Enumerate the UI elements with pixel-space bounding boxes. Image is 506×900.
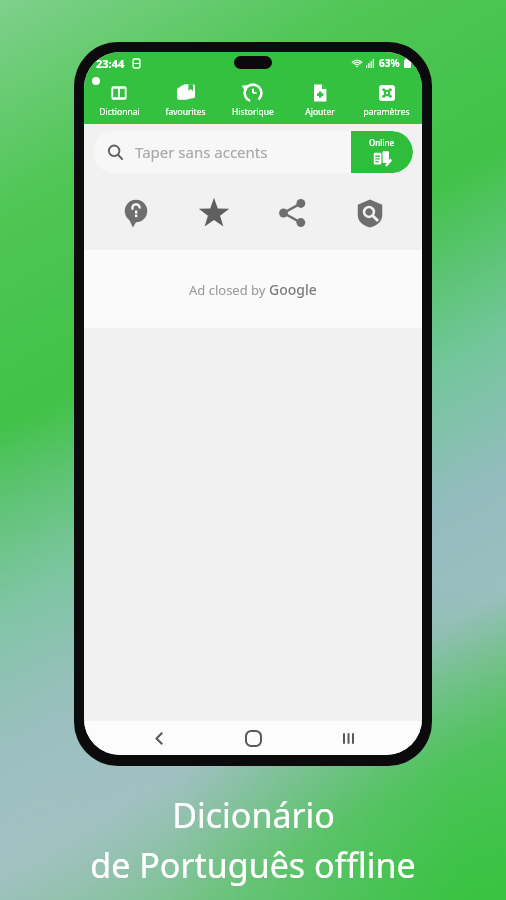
button[interactable]: Back: [139, 721, 179, 755]
staticText: Ajouter: [305, 106, 335, 118]
button[interactable]: Ad closed by: [84, 250, 422, 328]
button[interactable]: favourites: [152, 80, 219, 118]
button[interactable]: Privacy: [348, 191, 392, 235]
button[interactable]: Home: [233, 721, 273, 755]
staticText: de Português offline: [90, 842, 416, 888]
button[interactable]: paramètres: [353, 80, 420, 118]
button[interactable]: Dictionnai: [86, 80, 152, 118]
button[interactable]: Taper sans accents: [93, 131, 413, 173]
staticText: Dicionário: [172, 792, 335, 838]
staticText: Taper sans accents: [135, 142, 268, 162]
staticText: 23:44: [96, 56, 125, 71]
staticText: Ad closed by: [189, 281, 269, 299]
button[interactable]: Ajouter: [286, 80, 353, 118]
staticText: paramètres: [363, 106, 410, 118]
staticText: Google: [269, 280, 317, 299]
staticText: 63%: [379, 56, 400, 70]
button[interactable]: Share: [270, 191, 314, 235]
button[interactable]: Favourites: [192, 191, 236, 235]
staticText: Online: [369, 137, 395, 148]
button[interactable]: Help: [114, 191, 158, 235]
button[interactable]: Online dictionary: [351, 131, 413, 173]
button[interactable]: Recents: [328, 721, 368, 755]
button[interactable]: Historique: [219, 80, 286, 118]
staticText: Historique: [232, 106, 274, 118]
staticText: Dictionnai: [99, 106, 140, 118]
staticText: favourites: [165, 106, 206, 118]
